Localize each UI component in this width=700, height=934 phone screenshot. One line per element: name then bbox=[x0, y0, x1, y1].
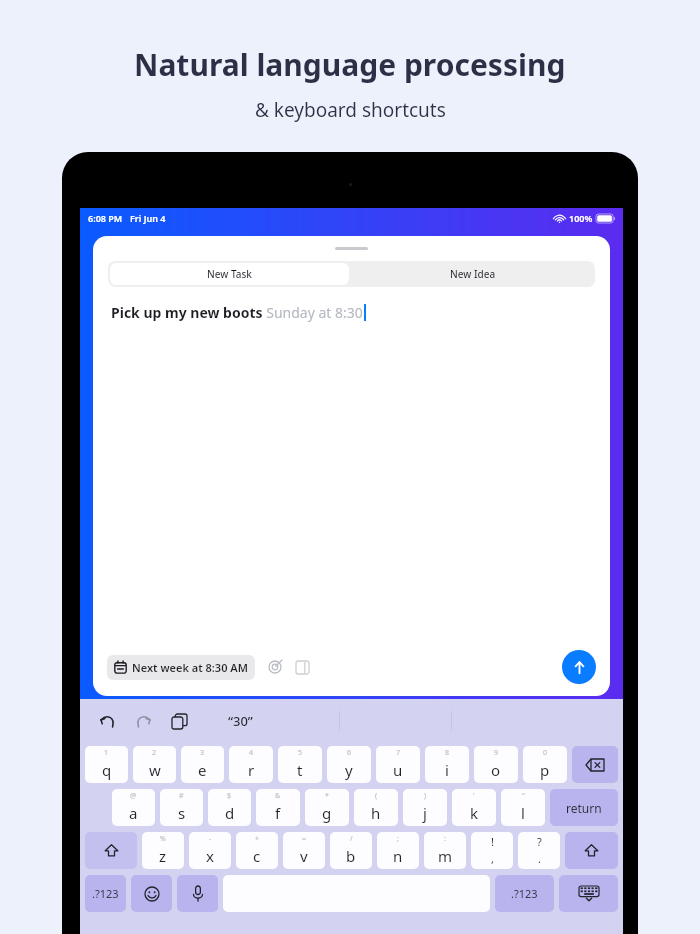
staticText: ( bbox=[375, 791, 378, 801]
staticText: .?123 bbox=[92, 886, 119, 901]
button[interactable]: Redo bbox=[132, 710, 154, 732]
button[interactable]: 6 bbox=[327, 746, 371, 783]
button[interactable]: ; bbox=[377, 832, 419, 869]
button[interactable]: ' bbox=[452, 789, 496, 826]
button[interactable]: / bbox=[330, 832, 372, 869]
button[interactable]: Shift bbox=[565, 832, 618, 869]
staticText: + bbox=[255, 834, 260, 844]
staticText: s bbox=[178, 803, 186, 823]
staticText: x bbox=[206, 846, 214, 866]
staticText: , bbox=[491, 851, 494, 866]
staticText: j bbox=[423, 803, 427, 823]
button[interactable]: + bbox=[236, 832, 278, 869]
button[interactable]: ? bbox=[518, 832, 560, 869]
button[interactable]: 1 bbox=[85, 746, 128, 783]
staticText: / bbox=[350, 834, 353, 844]
staticText: @ bbox=[130, 791, 137, 801]
button[interactable]: 7 bbox=[376, 746, 420, 783]
button[interactable]: .?123 bbox=[495, 875, 554, 912]
staticText: " bbox=[522, 791, 525, 801]
staticText: 8 bbox=[445, 748, 450, 758]
button[interactable]: Hide keyboard bbox=[559, 875, 618, 912]
button[interactable]: ) bbox=[403, 789, 447, 826]
staticText: ? bbox=[537, 834, 542, 849]
button[interactable]: & bbox=[256, 789, 300, 826]
button[interactable]: * bbox=[305, 789, 349, 826]
staticText: d bbox=[225, 803, 235, 823]
staticText: & bbox=[275, 791, 281, 801]
staticText: 4 bbox=[249, 748, 254, 758]
staticText: Pick up my new boots Sunday at 8:30 bbox=[111, 303, 363, 322]
other: Shift bbox=[584, 843, 599, 858]
button[interactable]: Shift bbox=[85, 832, 137, 869]
button[interactable]: 4 bbox=[229, 746, 273, 783]
staticText: b bbox=[346, 846, 356, 866]
button[interactable]: Undo bbox=[96, 710, 118, 732]
staticText: f bbox=[275, 803, 281, 823]
staticText: t bbox=[297, 760, 303, 780]
staticText: h bbox=[371, 803, 381, 823]
button[interactable]: 9 bbox=[474, 746, 518, 783]
button[interactable]: Next week at 8:30 AM bbox=[107, 655, 255, 680]
staticText: Fri Jun 4 bbox=[130, 212, 166, 224]
staticText: ; bbox=[397, 834, 399, 844]
staticText: 1 bbox=[104, 748, 109, 758]
staticText: z bbox=[159, 846, 167, 866]
button[interactable]: Emoji bbox=[131, 875, 172, 912]
button[interactable]: Tag bbox=[266, 658, 284, 676]
staticText: 5 bbox=[298, 748, 303, 758]
staticText: u bbox=[393, 760, 403, 780]
button[interactable]: 2 bbox=[133, 746, 176, 783]
button[interactable]: : bbox=[424, 832, 466, 869]
button[interactable]: Backspace bbox=[572, 746, 618, 783]
button[interactable]: # bbox=[160, 789, 203, 826]
button[interactable]: - bbox=[189, 832, 231, 869]
staticText: ' bbox=[473, 791, 475, 801]
staticText: . bbox=[538, 851, 541, 866]
button[interactable]: 8 bbox=[425, 746, 469, 783]
button[interactable]: .?123 bbox=[85, 875, 126, 912]
staticText: New Idea bbox=[450, 267, 496, 281]
staticText: o bbox=[491, 760, 501, 780]
staticText: r bbox=[248, 760, 255, 780]
other: Emoji bbox=[144, 886, 160, 902]
staticText: k bbox=[470, 803, 479, 823]
button[interactable]: New Idea bbox=[351, 261, 595, 287]
staticText: # bbox=[179, 791, 184, 801]
button[interactable]: 5 bbox=[278, 746, 322, 783]
staticText: w bbox=[149, 760, 161, 780]
button[interactable]: " bbox=[501, 789, 545, 826]
button[interactable]: 0 bbox=[523, 746, 567, 783]
button[interactable]: % bbox=[142, 832, 184, 869]
button[interactable]: ! bbox=[471, 832, 513, 869]
staticText: 100% bbox=[569, 212, 593, 224]
staticText: “30” bbox=[228, 712, 253, 730]
other: Backspace bbox=[585, 758, 605, 772]
staticText: - bbox=[209, 834, 212, 844]
staticText: 9 bbox=[494, 748, 499, 758]
button[interactable]: Paste bbox=[168, 710, 190, 732]
staticText: g bbox=[322, 803, 332, 823]
button[interactable]: $ bbox=[208, 789, 251, 826]
button[interactable]: New Task bbox=[110, 263, 349, 285]
button[interactable]: Dictate bbox=[177, 875, 218, 912]
staticText: a bbox=[129, 803, 138, 823]
other: Shift bbox=[104, 843, 119, 858]
staticText: .?123 bbox=[511, 886, 538, 901]
staticText: c bbox=[253, 846, 261, 866]
staticText: y bbox=[345, 760, 353, 780]
staticText: 0 bbox=[543, 748, 548, 758]
staticText: 7 bbox=[396, 748, 401, 758]
button[interactable]: 3 bbox=[181, 746, 224, 783]
button[interactable]: return bbox=[550, 789, 618, 826]
staticText: p bbox=[540, 760, 550, 780]
button[interactable]: = bbox=[283, 832, 325, 869]
button[interactable]: Send bbox=[562, 650, 596, 684]
button[interactable]: Notes bbox=[293, 658, 311, 676]
button[interactable]: @ bbox=[112, 789, 155, 826]
staticText: e bbox=[198, 760, 207, 780]
button[interactable]: ( bbox=[354, 789, 398, 826]
staticText: 2 bbox=[152, 748, 157, 758]
staticText: 6 bbox=[347, 748, 352, 758]
